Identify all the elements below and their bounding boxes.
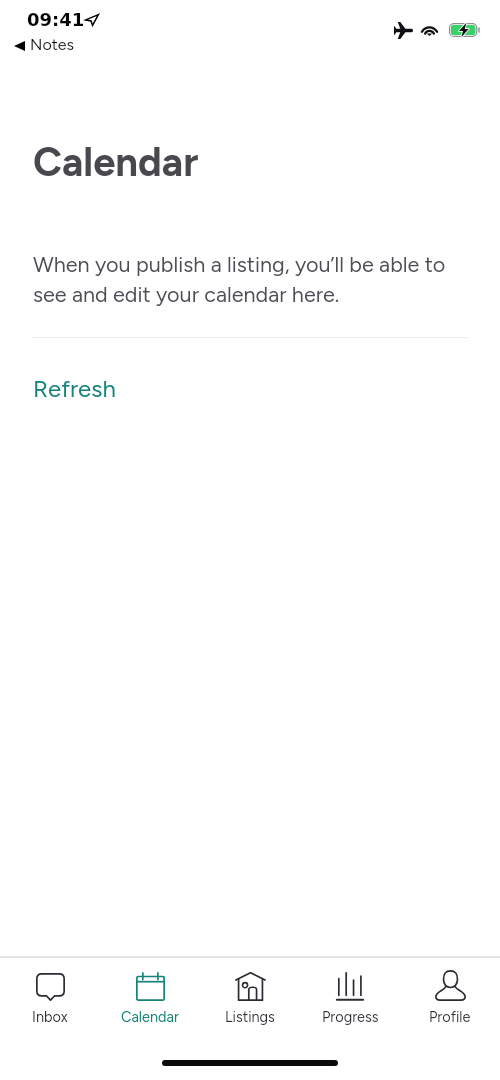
staticText: When you publish a listing, you’ll be ab… [33, 251, 473, 307]
button[interactable]: Progress [300, 958, 400, 1026]
button[interactable]: Calendar [100, 958, 200, 1026]
staticText: Calendar [121, 1008, 179, 1025]
staticText: Inbox [32, 1008, 68, 1025]
staticText: Refresh [33, 374, 116, 403]
button[interactable]: Listings [200, 958, 300, 1026]
staticText: Listings [225, 1008, 275, 1025]
button[interactable]: Profile [400, 958, 500, 1026]
button[interactable]: Refresh [20, 367, 129, 410]
staticText: Calendar [33, 138, 199, 186]
button[interactable]: Inbox [0, 958, 100, 1026]
staticText: 09:41 [27, 9, 85, 30]
button[interactable]: Back to Notes [14, 36, 74, 55]
staticText: Profile [429, 1008, 471, 1025]
staticText: Notes [30, 35, 74, 54]
staticText: Progress [322, 1008, 379, 1025]
